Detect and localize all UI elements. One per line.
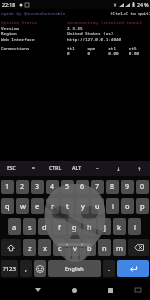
staticText: Version [1, 25, 20, 31]
staticText: 2.3.35 [67, 25, 83, 31]
staticText: 1 [5, 182, 10, 192]
button[interactable]: i [106, 198, 119, 214]
staticText: 0 0 0.00 0.00 [67, 50, 140, 56]
button[interactable]: Switch keyboard [131, 283, 145, 297]
staticText: English [65, 265, 84, 272]
button[interactable]: English [48, 260, 101, 277]
button[interactable]: ↑ [129, 161, 150, 176]
staticText: m [116, 243, 124, 253]
button[interactable]: 1 [1, 180, 14, 194]
button[interactable]: Backspace [128, 239, 149, 256]
staticText: j [104, 222, 106, 232]
button[interactable]: ?123 [1, 260, 18, 277]
staticText: c [58, 243, 62, 253]
staticText: e [35, 201, 40, 211]
staticText: q [5, 201, 10, 211]
staticText: y [81, 201, 85, 211]
button[interactable]: p [136, 198, 149, 214]
staticText: w [20, 201, 26, 211]
staticText: 8 [110, 182, 115, 192]
staticText: 24 % [137, 1, 149, 8]
button[interactable]: w [16, 198, 29, 214]
button[interactable]: CTRL [44, 161, 66, 176]
button[interactable]: Home [66, 282, 82, 298]
button[interactable]: s [23, 218, 36, 235]
staticText: Web Interface [1, 36, 35, 42]
button[interactable]: 4 [46, 180, 59, 194]
button[interactable]: Emoji [34, 260, 46, 277]
button[interactable]: ↓ [108, 161, 129, 176]
button[interactable]: z [23, 239, 36, 256]
button[interactable]: l [128, 218, 141, 235]
button[interactable]: = [22, 161, 44, 176]
staticText: = [32, 165, 35, 172]
button[interactable]: d [38, 218, 51, 235]
button[interactable]: . [103, 260, 115, 277]
staticText: http://127.0.0.1:4040 [67, 36, 122, 42]
button[interactable]: 6 [76, 180, 89, 194]
button[interactable]: r [46, 198, 59, 214]
button[interactable]: u [91, 198, 104, 214]
button[interactable]: h [83, 218, 96, 235]
button[interactable]: Shift [1, 239, 21, 256]
other: Shift [7, 244, 15, 252]
button[interactable]: v [68, 239, 81, 256]
button[interactable]: 8 [106, 180, 119, 194]
button[interactable]: n [98, 239, 111, 256]
button[interactable]: a [8, 218, 21, 235]
button[interactable]: y [76, 198, 89, 214]
staticText: b [87, 243, 92, 253]
staticText: r [51, 201, 55, 211]
staticText: u [95, 201, 100, 211]
staticText: v [73, 243, 77, 253]
other: Backspace [134, 244, 144, 251]
button[interactable]: 2 [16, 180, 29, 194]
button[interactable]: 9 [121, 180, 134, 194]
button[interactable]: − [87, 161, 108, 176]
button[interactable]: c [53, 239, 66, 256]
staticText: ↓ [116, 166, 121, 172]
button[interactable]: g [68, 218, 81, 235]
button[interactable]: x [38, 239, 51, 256]
button[interactable]: f [53, 218, 66, 235]
button[interactable]: q [1, 198, 14, 214]
staticText: g [72, 222, 77, 232]
staticText: 5 [65, 182, 70, 192]
staticText: o [125, 201, 130, 211]
other: Emoji [36, 265, 44, 273]
staticText: 0 [140, 182, 145, 192]
button[interactable]: m [113, 239, 126, 256]
staticText: t [66, 201, 69, 211]
button[interactable]: j [98, 218, 111, 235]
button[interactable]: , [20, 260, 32, 277]
button[interactable]: t [61, 198, 74, 214]
staticText: (Ctrl+C to quit) [110, 10, 150, 16]
staticText: Connections [1, 45, 30, 51]
button[interactable]: e [31, 198, 44, 214]
staticText: 2 [20, 182, 25, 192]
button[interactable]: Enter [117, 260, 149, 277]
staticText: , [25, 264, 27, 274]
staticText: 4 [50, 182, 55, 192]
button[interactable]: 5 [61, 180, 74, 194]
button[interactable]: b [83, 239, 96, 256]
button[interactable]: Recent apps [102, 282, 118, 298]
button[interactable]: 0 [136, 180, 149, 194]
staticText: ngrok by @inconshreveable [1, 10, 66, 16]
staticText: United States (us) [67, 30, 114, 36]
button[interactable]: ESC [0, 161, 22, 176]
button[interactable]: o [121, 198, 134, 214]
staticText: z [28, 243, 32, 253]
button[interactable]: ALT [66, 161, 87, 176]
staticText: n [102, 243, 107, 253]
staticText: k [117, 222, 122, 232]
staticText: ↑ [137, 166, 142, 172]
staticText: ?123 [3, 265, 16, 273]
button[interactable]: k [113, 218, 126, 235]
button[interactable]: 3 [31, 180, 44, 194]
staticText: − [96, 165, 99, 172]
staticText: 6 [80, 182, 85, 192]
button[interactable]: Back [30, 282, 46, 298]
staticText: a [12, 222, 17, 232]
button[interactable]: 7 [91, 180, 104, 194]
